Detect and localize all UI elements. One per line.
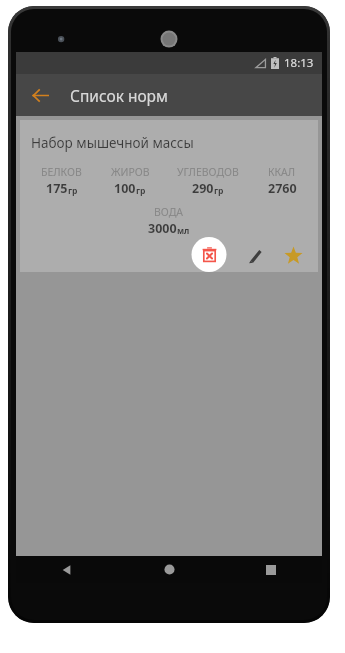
button[interactable]: Back	[22, 77, 58, 113]
staticText: Набор мышечной массы	[31, 134, 194, 152]
staticText: 2760	[268, 180, 297, 197]
staticText: БЕЛКОВ	[41, 165, 82, 179]
button[interactable]: Edit	[240, 240, 270, 270]
staticText: 175	[46, 180, 68, 197]
button[interactable]: Recents	[220, 556, 322, 583]
staticText: 100	[114, 180, 136, 197]
button[interactable]: Delete	[188, 237, 230, 272]
staticText: УГЛЕВОДОВ	[177, 165, 239, 179]
staticText: 18:13	[284, 55, 314, 71]
staticText: мл	[177, 225, 190, 237]
button[interactable]: Back	[16, 556, 118, 583]
staticText: Список норм	[70, 85, 168, 106]
button[interactable]: Home	[118, 556, 220, 583]
staticText: 290	[192, 180, 214, 197]
staticText: ЖИРОВ	[111, 165, 150, 179]
button[interactable]: Favorite	[278, 240, 308, 270]
staticText: гр	[68, 185, 78, 197]
staticText: ККАЛ	[268, 165, 296, 179]
staticText: гр	[136, 185, 146, 197]
button[interactable]: Набор мышечной массы	[20, 120, 318, 272]
staticText: гр	[214, 185, 224, 197]
staticText: 3000	[148, 220, 177, 237]
staticText: ВОДА	[154, 205, 184, 219]
